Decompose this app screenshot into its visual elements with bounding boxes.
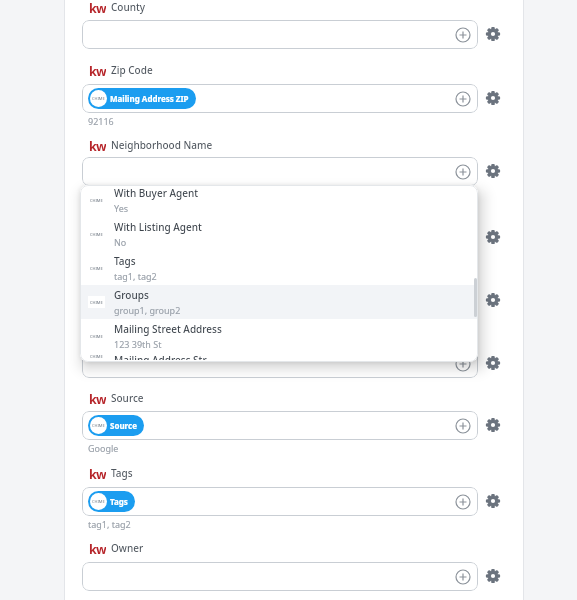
staticText: CHIME (90, 354, 103, 359)
button[interactable]: CHIME (88, 353, 478, 360)
staticText: kw (89, 541, 106, 555)
staticText: With Buyer Agent (114, 186, 199, 200)
button[interactable] (485, 355, 501, 371)
button[interactable]: CHIME (90, 415, 137, 436)
staticText: Neighborhood Name (111, 138, 213, 152)
button[interactable] (82, 349, 478, 378)
button[interactable] (485, 493, 501, 509)
button[interactable] (485, 229, 501, 245)
button[interactable]: CHIME (82, 84, 478, 113)
button[interactable] (485, 568, 501, 584)
staticText: Source (111, 391, 144, 405)
staticText: kw (89, 466, 106, 480)
staticText: CHIME (90, 266, 103, 271)
button[interactable]: CHIME (90, 491, 128, 512)
staticText: CHIME (90, 232, 103, 237)
button[interactable] (485, 90, 501, 106)
staticText: Mailing Street Address (114, 322, 222, 336)
staticText: kw (89, 138, 106, 152)
staticText: Owner (111, 541, 144, 555)
staticText: tag1, tag2 (88, 518, 131, 530)
button[interactable] (485, 26, 501, 42)
button[interactable]: CHIME (90, 88, 189, 109)
staticText: 123 39th St (114, 338, 162, 350)
staticText: CHIME (92, 96, 105, 101)
staticText: CHIME (92, 423, 105, 428)
button[interactable]: CHIME (88, 251, 478, 285)
button[interactable] (485, 292, 501, 308)
staticText: Google (88, 442, 119, 454)
staticText: Tags (110, 496, 128, 507)
staticText: tag1, tag2 (114, 270, 157, 282)
button[interactable] (82, 562, 478, 591)
button[interactable]: CHIME (88, 319, 478, 353)
button[interactable] (82, 20, 478, 49)
staticText: Source (110, 420, 137, 431)
staticText: Tags (114, 254, 136, 268)
button[interactable] (82, 157, 478, 186)
staticText: Zip Code (111, 63, 153, 77)
staticText: 92116 (88, 115, 114, 127)
button[interactable]: CHIME (88, 217, 478, 251)
button[interactable]: CHIME (88, 285, 478, 319)
button[interactable]: CHIME (82, 487, 478, 516)
staticText: Mailing Address ZIP (110, 93, 189, 104)
button[interactable]: CHIME (82, 411, 478, 440)
staticText: CHIME (90, 198, 103, 203)
button[interactable]: CHIME (88, 185, 478, 217)
staticText: No (114, 236, 127, 248)
button[interactable] (485, 163, 501, 179)
staticText: CHIME (90, 300, 103, 305)
staticText: CHIME (92, 499, 105, 504)
staticText: Groups (114, 288, 149, 302)
staticText: Mailing Address Str (114, 353, 207, 360)
staticText: Yes (114, 202, 129, 214)
staticText: kw (89, 0, 106, 14)
staticText: Tags (111, 466, 133, 480)
staticText: group1, group2 (114, 304, 181, 316)
staticText: kw (89, 63, 106, 77)
staticText: CHIME (90, 334, 103, 339)
staticText: County (111, 0, 146, 14)
staticText: kw (89, 391, 106, 405)
button[interactable] (485, 417, 501, 433)
staticText: With Listing Agent (114, 220, 202, 234)
